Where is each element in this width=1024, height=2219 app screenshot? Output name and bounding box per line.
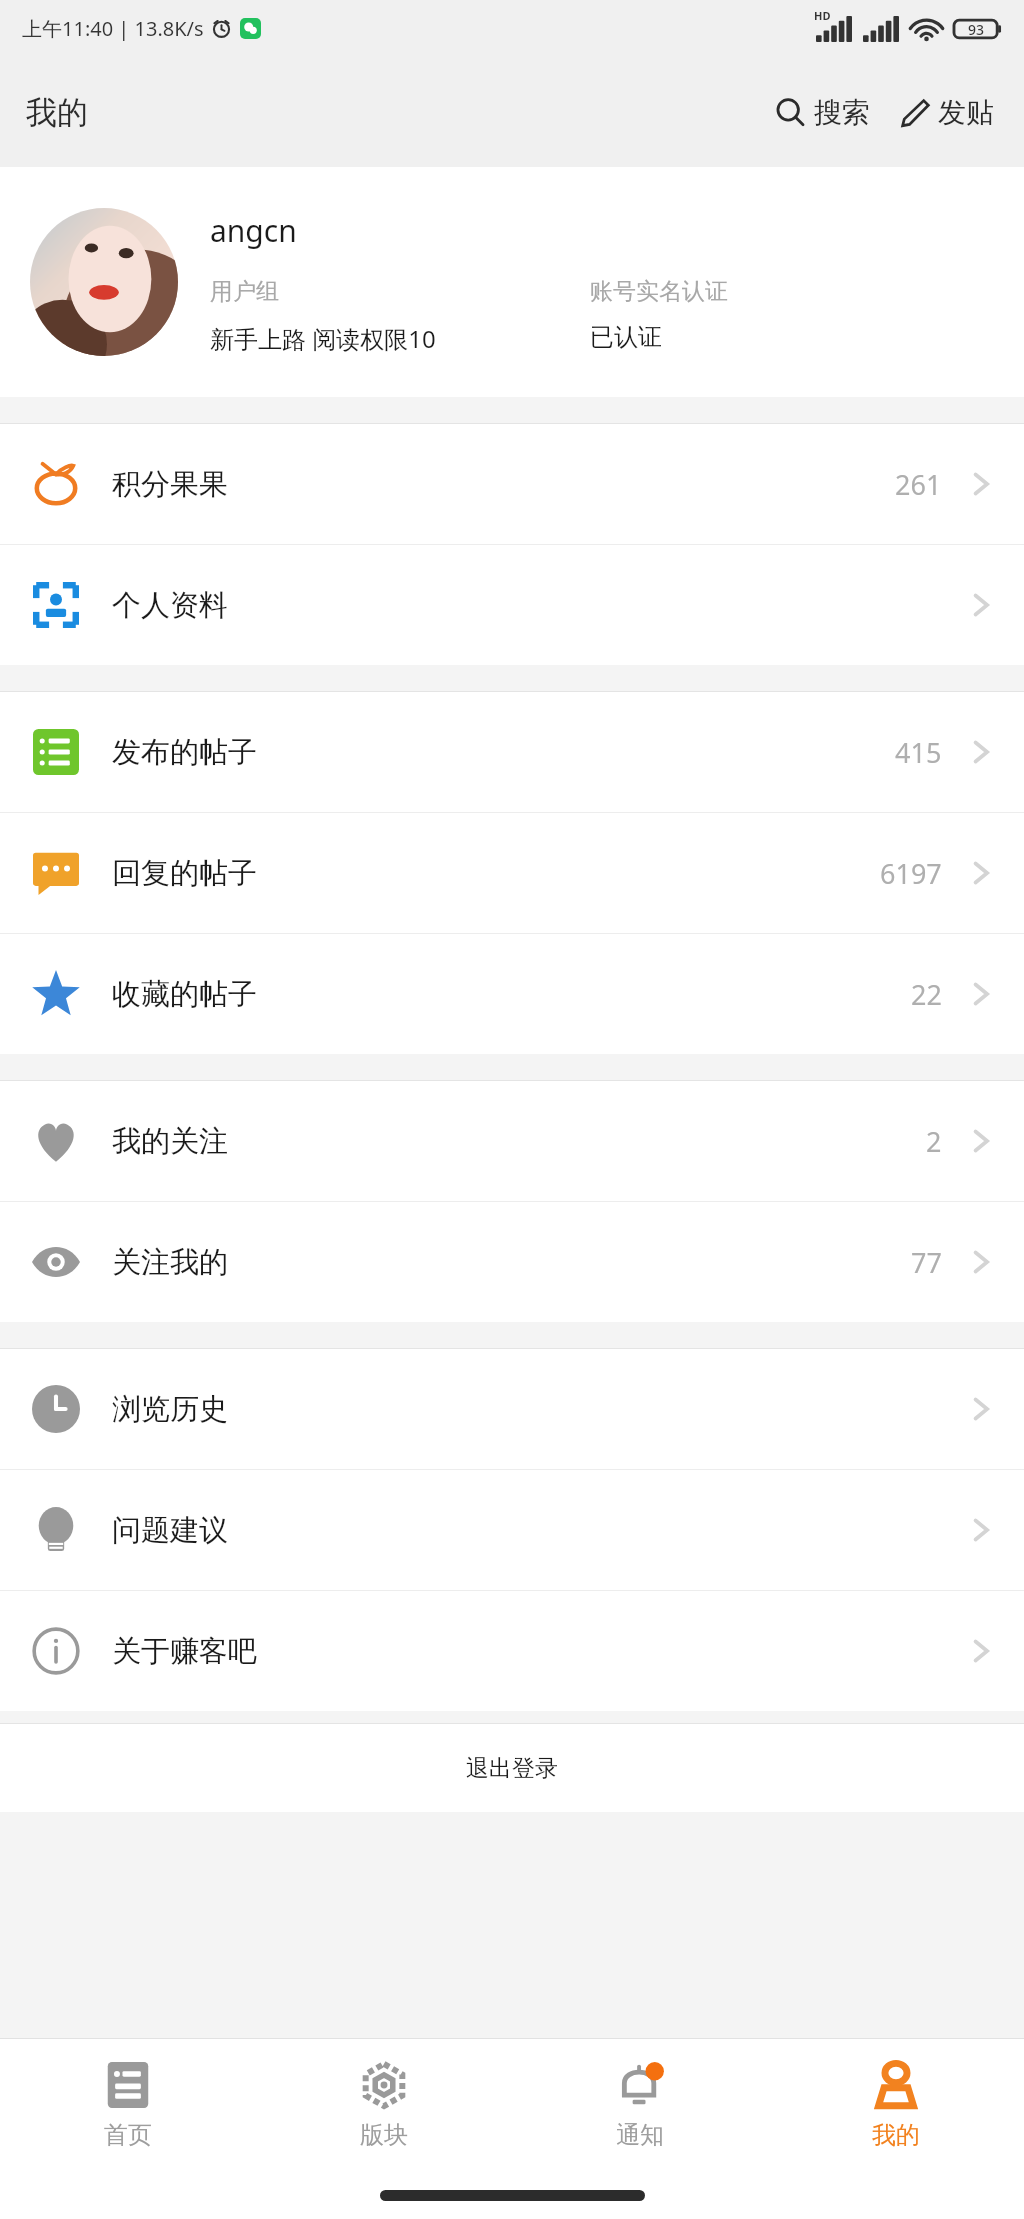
button[interactable]: 收藏的帖子	[0, 934, 1024, 1054]
button[interactable]: 通知	[512, 2039, 768, 2171]
staticText: 回复的帖子	[112, 855, 880, 892]
staticText: 用户组	[210, 277, 590, 306]
button[interactable]: 个人资料	[0, 545, 1024, 665]
staticText: 22	[911, 976, 942, 1013]
button[interactable]: 首页	[0, 2039, 256, 2171]
button[interactable]: 关于赚客吧	[0, 1591, 1024, 1711]
button[interactable]: 关注我的	[0, 1202, 1024, 1322]
staticText: 我的关注	[112, 1123, 926, 1160]
staticText: 关于赚客吧	[112, 1633, 964, 1670]
staticText: 关注我的	[112, 1244, 911, 1281]
staticText: 我的	[26, 93, 88, 132]
staticText: 93	[968, 20, 985, 39]
staticText: 搜索	[814, 95, 870, 130]
button[interactable]: 我的	[768, 2039, 1024, 2171]
button[interactable]: angcn	[0, 167, 1024, 397]
staticText: 发贴	[938, 95, 994, 130]
staticText: 退出登录	[466, 1754, 558, 1783]
staticText: 个人资料	[112, 587, 964, 624]
button[interactable]: 问题建议	[0, 1470, 1024, 1590]
button[interactable]: 回复的帖子	[0, 813, 1024, 933]
staticText: 浏览历史	[112, 1391, 964, 1428]
staticText: 77	[911, 1244, 942, 1281]
staticText: 2	[926, 1123, 942, 1160]
button[interactable]: 版块	[256, 2039, 512, 2171]
button[interactable]: 搜索	[768, 87, 876, 138]
staticText: 261	[895, 466, 942, 503]
staticText: 6197	[880, 855, 942, 892]
staticText: 上午11:40 | 13.8K/s	[22, 15, 204, 42]
staticText: 已认证	[590, 322, 662, 352]
staticText: angcn	[210, 210, 297, 251]
button[interactable]: 浏览历史	[0, 1349, 1024, 1469]
staticText: 收藏的帖子	[112, 976, 911, 1013]
button[interactable]: 发布的帖子	[0, 692, 1024, 812]
staticText: 首页	[104, 2120, 152, 2150]
staticText: 415	[895, 734, 942, 771]
button[interactable]: 退出登录	[0, 1724, 1024, 1812]
staticText: 版块	[360, 2120, 408, 2150]
staticText: HD	[814, 8, 831, 23]
button[interactable]: 积分果果	[0, 424, 1024, 544]
staticText: 积分果果	[112, 466, 895, 503]
staticText: 通知	[616, 2120, 664, 2150]
staticText: 我的	[872, 2120, 920, 2150]
staticText: 账号实名认证	[590, 277, 728, 306]
staticText: 发布的帖子	[112, 734, 895, 771]
button[interactable]: 发贴	[892, 87, 1000, 138]
staticText: 新手上路 阅读权限10	[210, 322, 590, 355]
button[interactable]: 我的关注	[0, 1081, 1024, 1201]
staticText: 问题建议	[112, 1512, 964, 1549]
